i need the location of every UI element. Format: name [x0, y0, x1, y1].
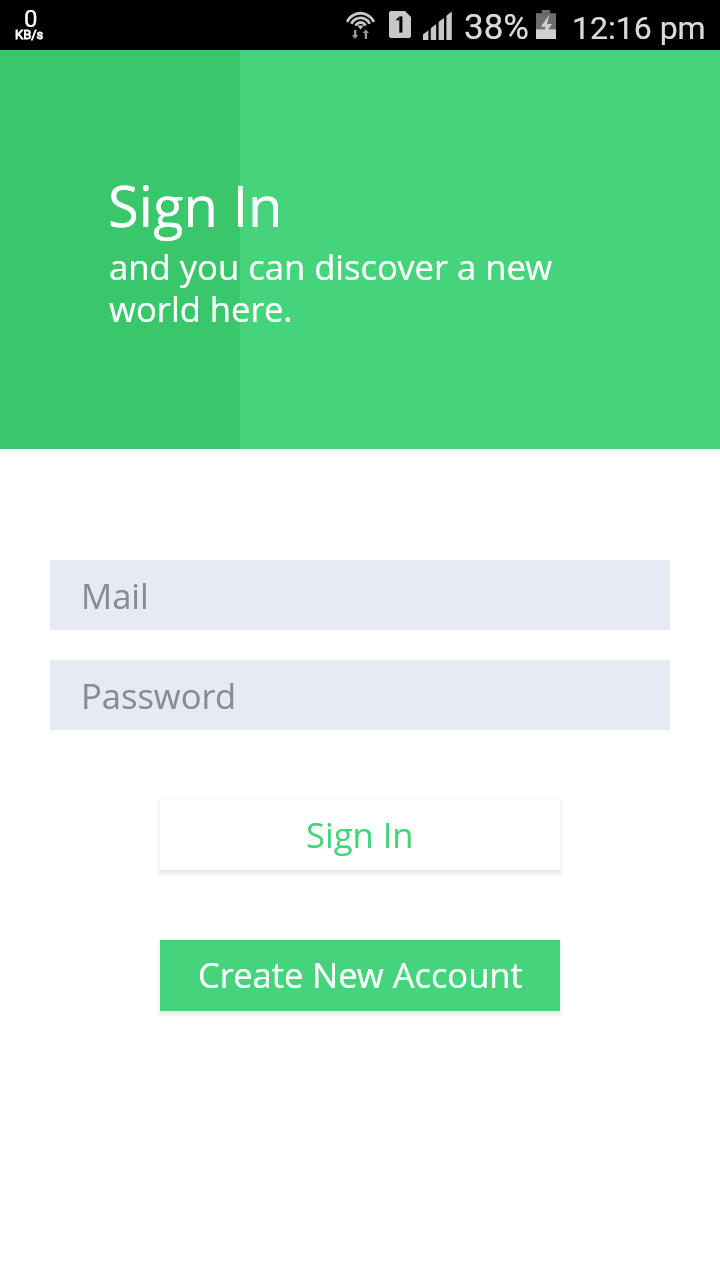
button[interactable]: Password	[50, 660, 670, 730]
button[interactable]: Sign In	[160, 799, 560, 870]
staticText: 38%	[464, 7, 529, 48]
staticText: 12:16 pm	[572, 9, 706, 47]
staticText: Sign In	[306, 811, 414, 858]
staticText: 0	[24, 5, 38, 33]
staticText: Sign In	[108, 167, 283, 243]
button[interactable]: Mail	[50, 560, 670, 630]
other: SIM card 1	[389, 11, 411, 38]
staticText: Mail	[81, 572, 149, 619]
other: Wi-Fi connected	[346, 11, 375, 38]
button[interactable]: Create New Account	[160, 940, 560, 1011]
staticText: and you can discover a new world here.	[109, 243, 579, 332]
other: Mobile signal strength	[423, 10, 452, 40]
staticText: KB/s	[15, 27, 44, 42]
other: Battery charging, 38 percent	[536, 10, 556, 39]
staticText: Create New Account	[198, 951, 523, 998]
staticText: Password	[81, 672, 237, 719]
